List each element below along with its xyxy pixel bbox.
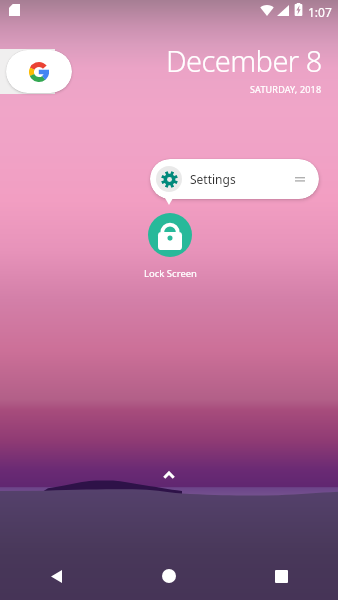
staticText: 1:07: [308, 4, 332, 20]
staticText: Settings: [190, 171, 236, 187]
button[interactable]: Recent apps: [225, 552, 338, 600]
button[interactable]: Home: [112, 552, 225, 600]
staticText: SATURDAY, 2018: [250, 83, 322, 95]
button[interactable]: Settings: [150, 159, 319, 199]
button[interactable]: Open app drawer: [162, 470, 176, 480]
button[interactable]: Back: [0, 552, 112, 600]
staticText: Lock Screen: [144, 267, 197, 280]
staticText: December 8: [166, 41, 322, 80]
button[interactable]: [148, 213, 192, 257]
button[interactable]: Google Search: [6, 50, 72, 93]
